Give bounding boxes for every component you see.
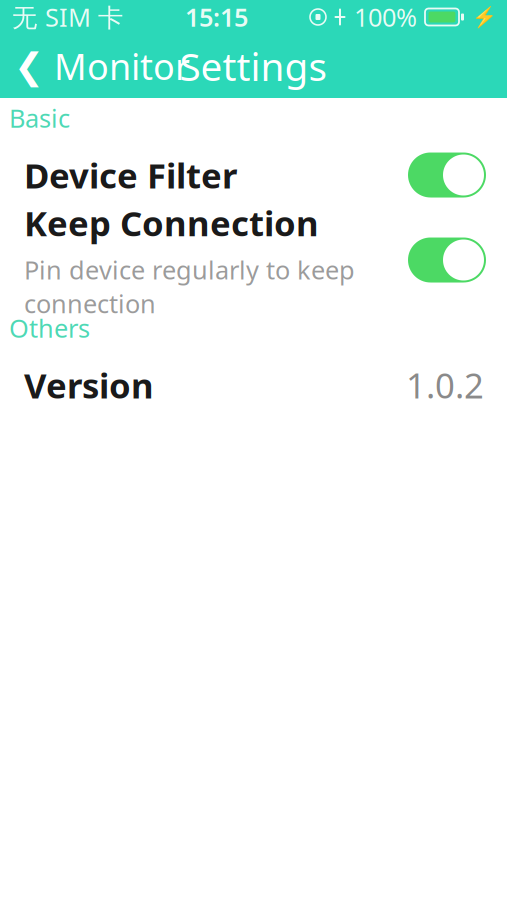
staticText: Settings — [179, 40, 327, 92]
button[interactable]: ❮ — [0, 34, 202, 98]
button[interactable]: Device Filter — [0, 138, 507, 212]
staticText: Pin device regularly to keep connection — [24, 253, 355, 320]
staticText: Device Filter — [24, 152, 237, 198]
staticText: Keep Connection — [24, 200, 319, 246]
staticText: Basic — [9, 101, 70, 135]
staticText: 100% — [354, 0, 417, 34]
staticText: Monitor — [54, 42, 190, 90]
staticText: 15:15 — [185, 0, 248, 34]
staticText: ❮ — [14, 46, 44, 86]
staticText: ⚡ — [472, 6, 497, 28]
staticText: 无 SIM 卡 — [12, 0, 123, 34]
staticText: 1.0.2 — [406, 362, 484, 408]
staticText: Others — [9, 311, 90, 345]
button[interactable]: Version — [0, 348, 507, 422]
button[interactable]: Keep Connection — [0, 212, 507, 308]
staticText: Version — [24, 362, 154, 408]
